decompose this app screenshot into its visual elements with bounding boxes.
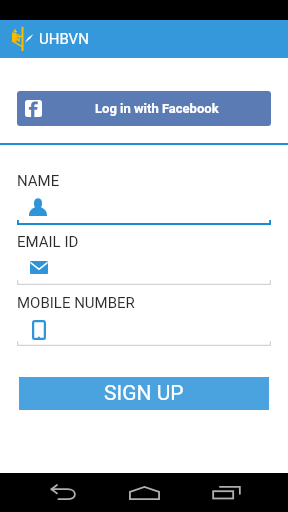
other: UHBVN logo xyxy=(13,25,34,51)
staticText: Log in with Facebook xyxy=(95,101,219,116)
button[interactable]: Home xyxy=(112,473,176,512)
staticText: UHBVN xyxy=(39,30,89,48)
button[interactable]: Recent apps xyxy=(194,473,258,512)
staticText: SIGN UP xyxy=(104,381,184,406)
button[interactable]: Log in with Facebook xyxy=(17,91,271,126)
button[interactable]: SIGN UP xyxy=(19,377,269,410)
staticText: NAME xyxy=(17,172,60,190)
staticText: EMAIL ID xyxy=(17,233,79,251)
button[interactable]: Back xyxy=(32,473,96,512)
staticText: MOBILE NUMBER xyxy=(17,294,135,312)
